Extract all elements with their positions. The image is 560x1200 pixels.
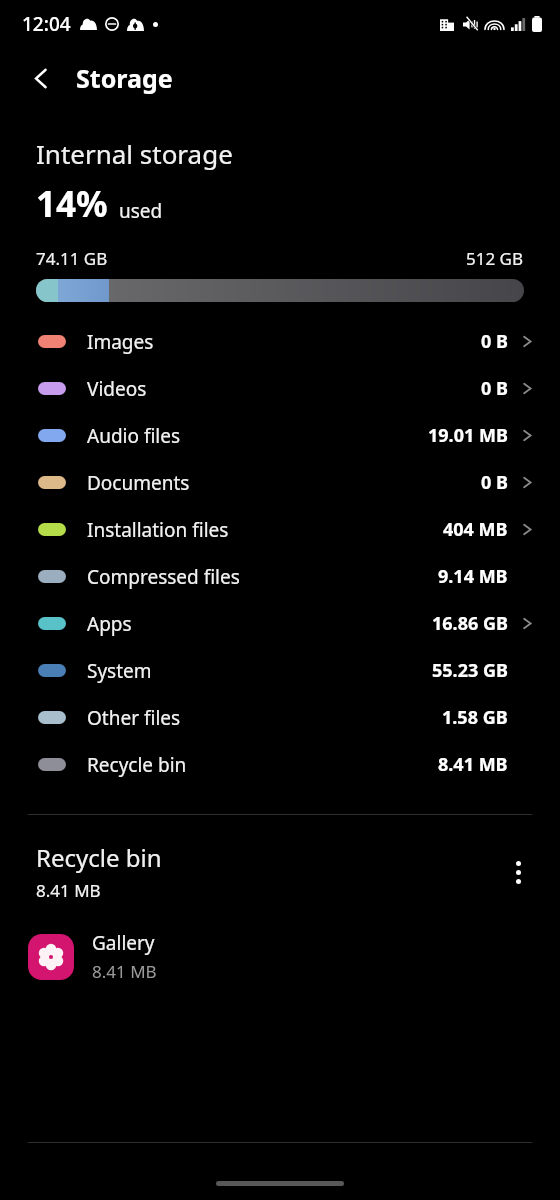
staticText: 512 GB [466,247,524,270]
button[interactable]: Audio files [0,412,560,459]
staticText: Apps [87,611,132,637]
staticText: 1.58 GB [442,705,508,730]
staticText: Documents [87,470,190,496]
staticText: 74.11 GB [36,247,108,270]
button[interactable]: Gallery [0,926,560,987]
button[interactable]: Recycle bin [36,841,162,902]
staticText: Recycle bin [36,841,162,874]
button[interactable]: Videos [0,365,560,412]
staticText: Installation files [87,517,229,543]
staticText: 404 MB [443,517,508,542]
staticText: Audio files [87,423,181,449]
staticText: Compressed files [87,564,240,590]
staticText: Gallery [92,930,155,956]
button[interactable]: Other files [0,694,560,741]
staticText: used [119,198,163,224]
staticText: Other files [87,705,181,731]
staticText: 8.41 MB [92,960,157,983]
staticText: Images [87,329,154,355]
button[interactable]: Back [16,53,66,103]
staticText: Videos [87,376,147,402]
button[interactable]: Images [0,318,560,365]
staticText: 14% [36,180,108,228]
button[interactable]: Installation files [0,506,560,553]
staticText: 16.86 GB [432,611,508,636]
staticText: Recycle bin [87,752,187,778]
button[interactable]: Recycle bin [0,741,560,788]
button[interactable]: Documents [0,459,560,506]
button[interactable]: More options [496,850,540,894]
staticText: Storage [76,61,173,95]
staticText: 19.01 MB [428,423,508,448]
staticText: 8.41 MB [36,879,101,902]
staticText: System [87,658,152,684]
button[interactable]: System [0,647,560,694]
staticText: 0 B [481,329,508,354]
staticText: 9.14 MB [438,564,508,589]
button[interactable]: Apps [0,600,560,647]
staticText: Internal storage [36,136,233,171]
staticText: 0 B [481,470,508,495]
staticText: 0 B [481,376,508,401]
staticText: 12:04 [22,11,71,37]
staticText: 55.23 GB [432,658,508,683]
staticText: 8.41 MB [438,752,508,777]
button[interactable]: Compressed files [0,553,560,600]
